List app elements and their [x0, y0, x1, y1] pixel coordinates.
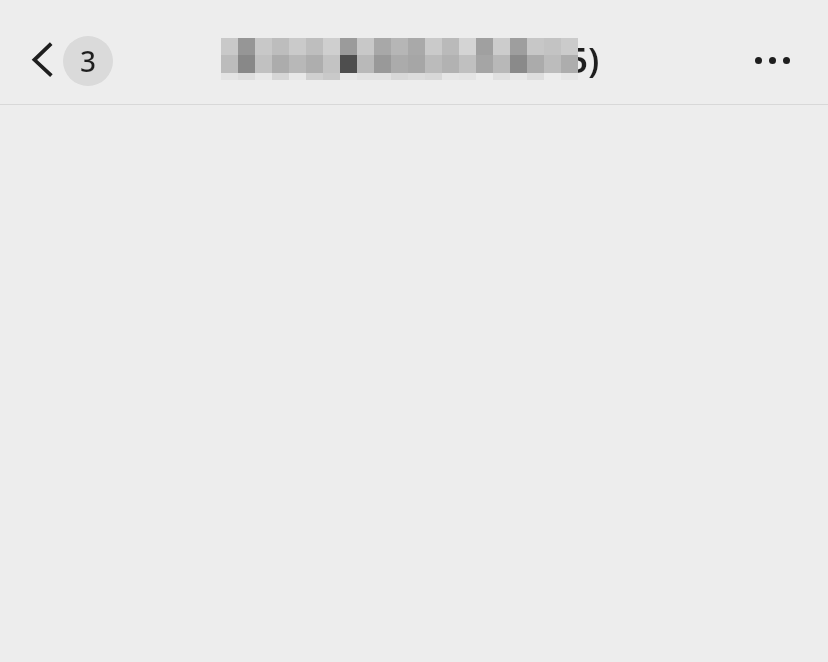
button[interactable]: Back — [11, 37, 73, 83]
staticText: 5) — [568, 36, 600, 84]
button[interactable]: 3 — [63, 36, 113, 86]
staticText: 3 — [80, 42, 97, 80]
button[interactable]: More options — [748, 36, 796, 84]
